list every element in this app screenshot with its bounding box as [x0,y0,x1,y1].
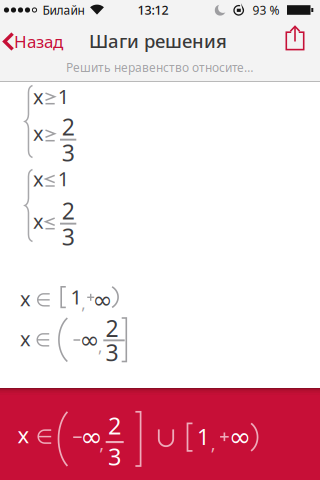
staticText: , [211,431,216,456]
staticText: x [20,325,31,352]
staticText: 3 [108,440,121,472]
staticText: 2 [108,409,121,441]
staticText: 1 [70,283,81,310]
staticText: 13:12 [137,1,168,18]
staticText: 1 [197,421,210,451]
staticText: ∞ [80,421,102,453]
staticText: 2 [62,111,75,142]
staticText: 1 [58,165,69,192]
staticText: 3 [105,337,118,368]
staticText: 1 [58,83,69,110]
staticText: x [33,165,44,192]
button[interactable]: Назад [0,0,320,480]
staticText: ∞ [229,421,251,453]
staticText: x [18,420,30,450]
staticText: 3 [62,221,75,252]
staticText: x [20,285,31,312]
staticText: x [33,83,44,110]
staticText: 2 [105,312,118,344]
staticText: x [33,119,44,147]
staticText: Назад [14,30,63,53]
staticText: x [33,207,44,235]
staticText: Решить неравенство относите… [66,59,253,75]
staticText: Билайн [42,2,84,18]
staticText: Шаги решения [89,28,227,53]
button[interactable] [0,0,320,480]
staticText: , [99,431,104,456]
staticText: ∞ [92,286,112,314]
staticText: ∞ [79,326,99,354]
staticText: 3 [62,137,75,168]
staticText: 93 % [252,2,279,18]
staticText: 2 [62,195,75,226]
staticText: , [81,292,85,314]
staticText: , [98,335,102,357]
